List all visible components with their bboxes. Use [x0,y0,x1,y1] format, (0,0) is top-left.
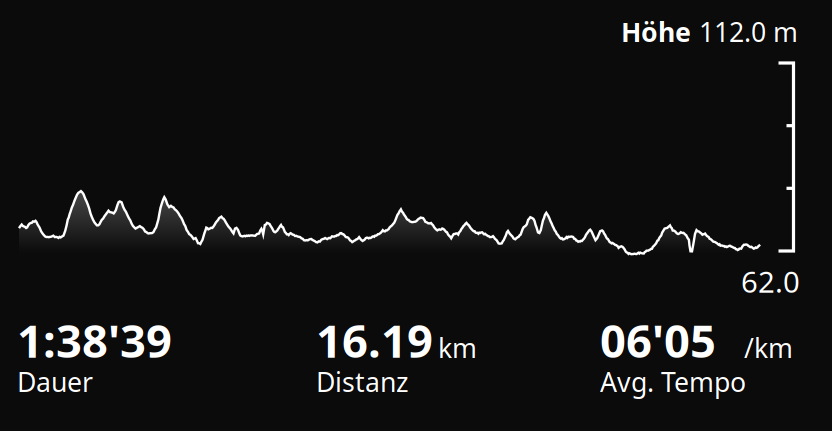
staticText: /km [744,330,793,365]
staticText: km [438,330,477,365]
button[interactable]: 16.19 [316,310,536,388]
staticText: 16.19 [316,310,433,370]
staticText: Höhe [621,14,691,49]
staticText: Distanz [316,364,409,399]
staticText: 06'05 [600,310,716,370]
button[interactable]: Höhe 112.0 m, Höhenprofil [0,0,832,431]
staticText: 1:38'39 [17,310,172,370]
staticText: Dauer [17,364,93,399]
staticText: Avg. Tempo [600,364,746,399]
button[interactable]: 1:38'39 [17,310,237,388]
staticText: 62.0 [741,262,800,301]
staticText: 112.0 m [699,14,798,49]
button[interactable]: 06'05 [600,310,820,388]
